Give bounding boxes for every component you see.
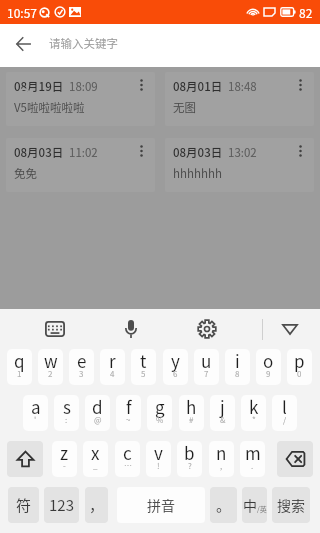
staticText: 08月19日	[14, 78, 64, 95]
button[interactable]: e	[69, 349, 94, 385]
button[interactable]: y	[163, 349, 188, 385]
button[interactable]: f	[116, 395, 141, 431]
staticText: 4	[110, 368, 115, 380]
button[interactable]: p	[287, 349, 312, 385]
staticText: o	[263, 349, 274, 373]
button[interactable]: a	[23, 395, 48, 431]
button[interactable]: b	[177, 441, 202, 477]
button[interactable]: Settings	[192, 314, 222, 344]
staticText: …	[124, 460, 132, 472]
button[interactable]: n	[209, 441, 234, 477]
button[interactable]: 拼音	[117, 487, 205, 523]
button[interactable]: Hide keyboard	[275, 314, 305, 344]
staticText: k	[249, 395, 259, 419]
staticText: g	[155, 395, 165, 419]
staticText: i	[235, 349, 240, 373]
staticText: 13:02	[228, 144, 257, 161]
button[interactable]: 08月01日	[165, 72, 314, 126]
staticText: j	[220, 395, 225, 419]
button[interactable]: ，	[85, 487, 108, 523]
staticText: -	[63, 460, 66, 472]
staticText: 请输入关键字	[49, 35, 118, 52]
staticText: !	[157, 460, 160, 472]
staticText: 10:57	[7, 4, 37, 21]
button[interactable]: Voice input	[116, 314, 146, 344]
staticText: &	[220, 414, 226, 426]
button[interactable]: 08月03日	[165, 138, 314, 192]
staticText: 2	[48, 368, 53, 380]
staticText: d	[92, 395, 103, 419]
button[interactable]: 08月19日	[6, 72, 155, 126]
staticText: v	[154, 441, 163, 465]
button[interactable]: l	[272, 395, 297, 431]
button[interactable]: h	[179, 395, 204, 431]
button[interactable]: c	[115, 441, 140, 477]
staticText: x	[91, 441, 100, 465]
button[interactable]: j	[210, 395, 235, 431]
staticText: 。	[216, 494, 232, 516]
staticText: a	[31, 395, 41, 419]
staticText: 18:48	[228, 78, 257, 95]
button[interactable]: Back	[4, 25, 42, 63]
button[interactable]: 123	[44, 487, 79, 523]
button[interactable]: t	[131, 349, 156, 385]
staticText: %	[156, 414, 164, 426]
button[interactable]: o	[256, 349, 281, 385]
button[interactable]: k	[241, 395, 266, 431]
button[interactable]: w	[38, 349, 63, 385]
button[interactable]: g	[147, 395, 172, 431]
button[interactable]: d	[85, 395, 110, 431]
staticText: 5	[141, 368, 146, 380]
staticText: 0	[297, 368, 302, 380]
button[interactable]: z	[52, 441, 77, 477]
button[interactable]: s	[54, 395, 79, 431]
button[interactable]: i	[225, 349, 250, 385]
button[interactable]: m	[240, 441, 265, 477]
staticText: 18:09	[69, 78, 98, 95]
button[interactable]: 符	[8, 487, 39, 523]
staticText: m	[245, 441, 261, 465]
button[interactable]: More options	[294, 138, 306, 164]
staticText: /	[283, 414, 287, 426]
staticText: 中	[243, 495, 257, 515]
staticText: 82	[299, 4, 313, 21]
staticText: 8	[235, 368, 240, 380]
staticText: p	[294, 349, 305, 373]
button[interactable]: More options	[135, 138, 147, 164]
button[interactable]: 08月03日	[6, 138, 155, 192]
staticText: ,	[220, 460, 223, 472]
button[interactable]: Chinese English toggle	[242, 487, 267, 523]
button[interactable]: Backspace	[277, 441, 313, 477]
staticText: b	[184, 441, 195, 465]
button[interactable]: q	[7, 349, 32, 385]
staticText: 无图	[173, 99, 196, 116]
staticText: n	[216, 441, 227, 465]
button[interactable]: v	[146, 441, 171, 477]
staticText: _	[93, 460, 98, 472]
staticText: hhhhhhh	[173, 165, 222, 182]
staticText: :	[65, 414, 68, 426]
staticText: V5啦啦啦啦啦	[14, 99, 85, 116]
staticText: ，	[89, 494, 105, 516]
button[interactable]: Shift	[7, 441, 43, 477]
button[interactable]: r	[100, 349, 125, 385]
staticText: e	[77, 349, 87, 373]
staticText: /英	[257, 504, 267, 514]
button[interactable]: x	[83, 441, 108, 477]
button[interactable]: u	[194, 349, 219, 385]
button[interactable]: Keyboard layout	[40, 314, 70, 344]
staticText: 08月03日	[173, 144, 223, 161]
staticText: r	[109, 349, 116, 373]
staticText: .	[251, 460, 254, 472]
button[interactable]: 搜索	[272, 487, 310, 523]
staticText: f	[126, 395, 132, 419]
staticText: 123	[49, 494, 74, 516]
staticText: '	[34, 414, 37, 426]
button[interactable]: 。	[210, 487, 237, 523]
staticText: 7	[204, 368, 209, 380]
staticText: u	[201, 349, 212, 373]
button[interactable]: More options	[294, 72, 306, 98]
staticText: 6	[173, 368, 178, 380]
button[interactable]: More options	[135, 72, 147, 98]
staticText: z	[60, 441, 69, 465]
